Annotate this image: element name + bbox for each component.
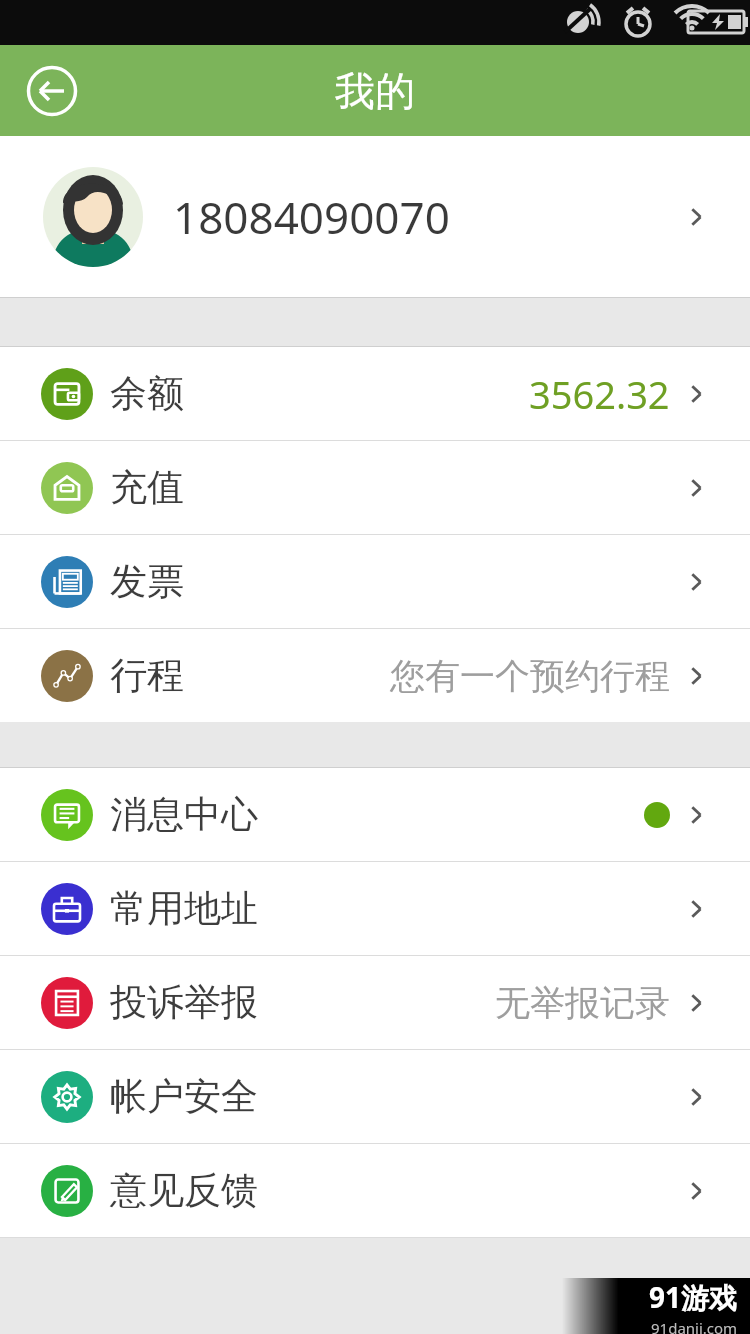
staticText: 行程 [110, 652, 184, 699]
staticText: 我的 [335, 66, 415, 116]
staticText: 18084090070 [173, 187, 450, 247]
button[interactable]: 帐户安全 [0, 1050, 750, 1143]
staticText: 发票 [110, 558, 184, 605]
button[interactable]: 充值 [0, 441, 750, 534]
staticText: 无举报记录 [495, 981, 670, 1025]
staticText: 意见反馈 [110, 1167, 258, 1214]
staticText: 消息中心 [110, 791, 258, 838]
button[interactable]: 发票 [0, 535, 750, 628]
button[interactable]: 行程 [0, 629, 750, 722]
staticText: 91danji.com [651, 1318, 738, 1334]
staticText: 91游戏 [649, 1278, 738, 1316]
button[interactable]: 18084090070 [0, 136, 750, 297]
button[interactable]: 投诉举报 [0, 956, 750, 1049]
staticText: 常用地址 [110, 885, 258, 932]
staticText: 您有一个预约行程 [390, 654, 670, 698]
staticText: 3562.32 [529, 368, 670, 420]
button[interactable]: 意见反馈 [0, 1144, 750, 1237]
button[interactable]: 余额 [0, 347, 750, 440]
staticText: 帐户安全 [110, 1073, 258, 1120]
staticText: 投诉举报 [110, 979, 258, 1026]
staticText: 余额 [110, 370, 184, 417]
staticText: 充值 [110, 464, 184, 511]
button[interactable]: 消息中心 [0, 768, 750, 861]
button[interactable]: Back [22, 61, 82, 121]
button[interactable]: 常用地址 [0, 862, 750, 955]
